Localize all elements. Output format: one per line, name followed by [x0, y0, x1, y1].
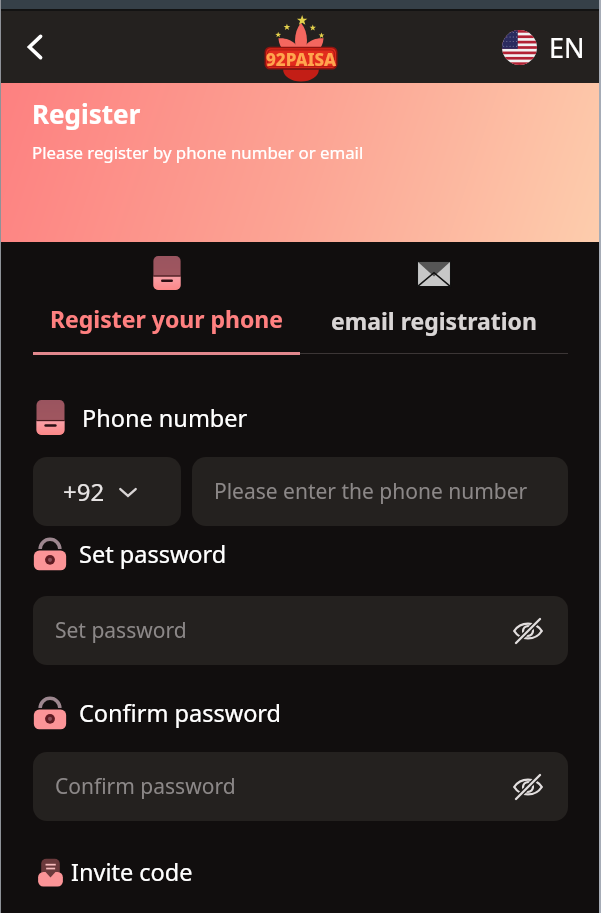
button[interactable]: email registration: [314, 242, 554, 336]
staticText: Register your phone: [50, 303, 284, 334]
staticText: Invite code: [71, 856, 193, 888]
button[interactable]: Show password: [511, 614, 545, 648]
staticText: Please enter the phone number: [214, 477, 528, 506]
staticText: Please register by phone number or email: [32, 141, 364, 164]
staticText: Confirm password: [55, 772, 236, 801]
staticText: Confirm password: [79, 697, 282, 729]
staticText: 92PAISA: [266, 48, 337, 71]
button[interactable]: Register your phone: [33, 242, 300, 334]
staticText: Phone number: [82, 402, 248, 434]
button[interactable]: Back: [13, 25, 57, 69]
button[interactable]: Set password: [33, 596, 568, 665]
staticText: email registration: [331, 305, 537, 336]
staticText: +92: [63, 475, 105, 508]
button[interactable]: Show password: [511, 770, 545, 804]
staticText: Set password: [55, 616, 187, 645]
button[interactable]: Language: [502, 29, 585, 66]
button[interactable]: Confirm password: [33, 752, 568, 821]
button[interactable]: Please enter the phone number: [192, 457, 568, 526]
staticText: Set password: [79, 538, 227, 570]
staticText: EN: [549, 29, 585, 66]
button[interactable]: +92: [33, 457, 181, 526]
staticText: Register: [32, 96, 141, 131]
